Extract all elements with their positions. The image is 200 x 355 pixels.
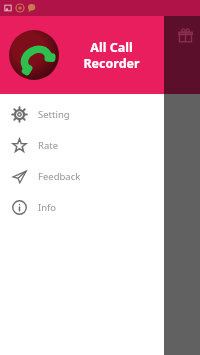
staticText: Setting [38,108,70,121]
staticText: All Call Recorder [83,39,140,71]
button[interactable]: Feedback [0,161,164,192]
button[interactable]: Rate [0,130,164,161]
staticText: Rate [38,139,59,152]
staticText: Feedback [38,170,81,183]
button[interactable]: Gift [172,22,198,48]
button[interactable]: Info [0,192,164,223]
button[interactable]: Setting [0,99,164,130]
staticText: Info [38,201,57,214]
